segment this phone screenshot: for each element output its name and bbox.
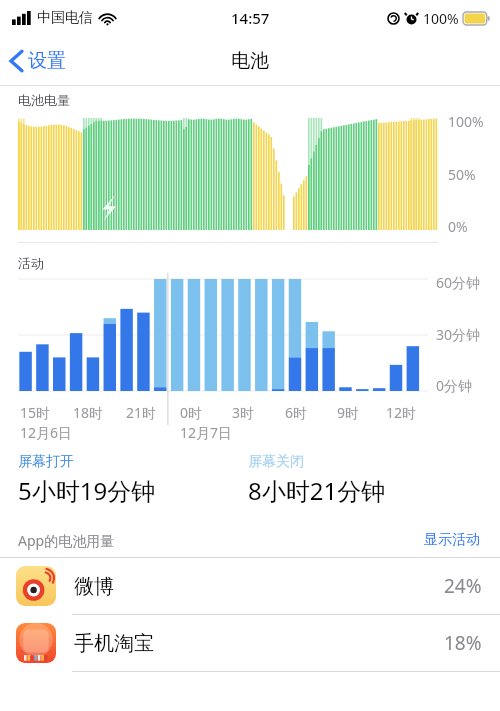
staticText: 8小时21分钟: [248, 474, 386, 507]
staticText: 100%: [448, 112, 484, 131]
staticText: 屏幕关闭: [248, 453, 304, 471]
staticText: 12月6日: [20, 423, 73, 442]
staticText: 9时: [337, 403, 360, 422]
staticText: 设置: [28, 49, 66, 73]
button[interactable]: 手机淘宝: [0, 615, 500, 671]
staticText: 12月7日: [180, 423, 233, 442]
staticText: 50%: [448, 165, 476, 184]
staticText: 60分钟: [436, 273, 481, 292]
staticText: 30分钟: [436, 325, 481, 344]
staticText: 微博: [74, 574, 114, 599]
staticText: 18%: [444, 630, 482, 656]
staticText: 屏幕打开: [18, 453, 74, 471]
staticText: 中国电信: [37, 9, 93, 27]
staticText: 14:57: [231, 8, 270, 28]
staticText: 18时: [73, 403, 104, 422]
staticText: 0分钟: [436, 376, 473, 395]
staticText: 24%: [444, 573, 482, 599]
staticText: App的电池用量: [18, 531, 115, 550]
staticText: 电池: [231, 49, 269, 73]
staticText: 6时: [285, 403, 308, 422]
staticText: 100%: [423, 9, 459, 28]
staticText: 3时: [232, 403, 255, 422]
button[interactable]: 显示活动: [420, 527, 484, 553]
staticText: 电池电量: [18, 92, 70, 108]
staticText: 活动: [18, 255, 44, 271]
staticText: 12时: [386, 403, 417, 422]
staticText: 5小时19分钟: [18, 474, 156, 507]
staticText: 0时: [180, 403, 203, 422]
staticText: 21时: [126, 403, 157, 422]
button[interactable]: 设置: [0, 43, 76, 79]
button[interactable]: 微博: [0, 558, 500, 614]
staticText: 手机淘宝: [74, 631, 154, 656]
staticText: 0%: [448, 217, 468, 236]
staticText: 显示活动: [424, 531, 480, 549]
staticText: 15时: [20, 403, 51, 422]
